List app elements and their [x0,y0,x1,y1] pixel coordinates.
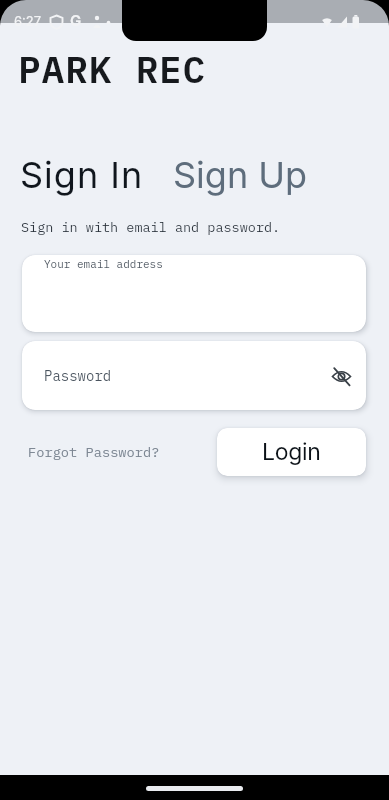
button[interactable]: Login [217,428,366,476]
staticText: Sign in with email and password. [21,218,281,236]
staticText: Sign In [20,153,144,197]
staticText: Password [44,367,112,385]
staticText: G [70,11,82,29]
button[interactable]: Sign In [20,153,144,197]
staticText: PARK REC [18,44,207,93]
button[interactable]: Password [22,341,366,410]
button[interactable]: Forgot Password? [28,443,160,461]
staticText: Your email address [44,257,163,271]
button[interactable]: Your email address [22,255,366,332]
button[interactable]: Sign Up [173,153,308,197]
staticText: 6:27 [14,13,42,29]
staticText: Login [262,438,321,466]
staticText: Sign Up [173,153,308,197]
staticText: Forgot Password? [28,443,160,461]
